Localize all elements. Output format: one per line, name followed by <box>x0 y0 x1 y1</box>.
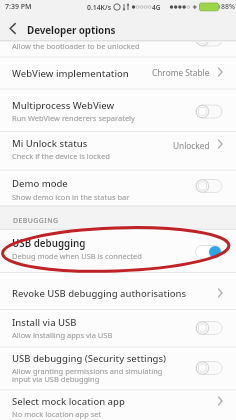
staticText: Check if the device is locked <box>12 151 110 161</box>
staticText: USB debugging (Security settings) <box>12 352 167 365</box>
staticText: WebView implementation <box>12 67 129 80</box>
button[interactable] <box>0 16 26 40</box>
button[interactable] <box>0 170 236 206</box>
staticText: Chrome Stable <box>152 67 210 78</box>
button[interactable] <box>0 57 236 89</box>
staticText: Allow the bootloader to be unlocked <box>12 41 140 51</box>
staticText: Show demo icon in the status bar <box>12 192 130 202</box>
staticText: Demo mode <box>12 177 68 190</box>
staticText: Run WebView renderers separately <box>12 113 135 123</box>
staticText: input via USB debugging <box>12 374 100 384</box>
staticText: Install via USB <box>12 316 77 329</box>
staticText: Revoke USB debugging authorisations <box>12 287 187 300</box>
button[interactable] <box>0 89 236 132</box>
staticText: Mi Unlock status <box>12 137 88 150</box>
staticText: Debug mode when USB is connected <box>12 251 142 261</box>
button[interactable] <box>0 390 236 420</box>
staticText: No mock location app set <box>12 409 102 419</box>
staticText: Developer options <box>27 23 116 36</box>
staticText: Allow installing apps via USB <box>12 330 113 340</box>
button[interactable] <box>0 131 236 170</box>
staticText: 4G <box>152 3 161 12</box>
staticText: Unlocked <box>173 140 210 151</box>
staticText: 88% <box>221 2 235 12</box>
staticText: USB debugging <box>12 237 86 250</box>
staticText: 0.14K/s <box>87 3 111 12</box>
staticText: Select mock location app <box>12 395 125 408</box>
button[interactable] <box>0 230 236 273</box>
staticText: DEBUGGING <box>13 216 59 226</box>
staticText: 7:39 PM <box>5 2 32 12</box>
staticText: Multiprocess WebView <box>12 99 115 112</box>
button[interactable] <box>0 41 236 57</box>
button[interactable] <box>0 347 236 390</box>
button[interactable] <box>0 272 236 309</box>
button[interactable] <box>0 309 236 347</box>
staticText: Allow granting permissions and simulatin… <box>12 366 163 376</box>
